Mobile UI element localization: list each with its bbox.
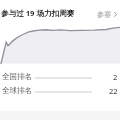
button[interactable]: 全球排名 — [0, 84, 120, 98]
staticText: 22 — [109, 86, 118, 96]
staticText: 参与过 19 场力扣周赛 — [1, 8, 75, 18]
staticText: 参赛 — [97, 10, 112, 19]
staticText: 2 — [113, 72, 118, 82]
staticText: 全国排名 — [2, 72, 33, 82]
staticText: 全球排名 — [2, 86, 33, 96]
button[interactable]: 全国排名 — [0, 70, 120, 84]
button[interactable]: 参赛 — [97, 6, 119, 22]
